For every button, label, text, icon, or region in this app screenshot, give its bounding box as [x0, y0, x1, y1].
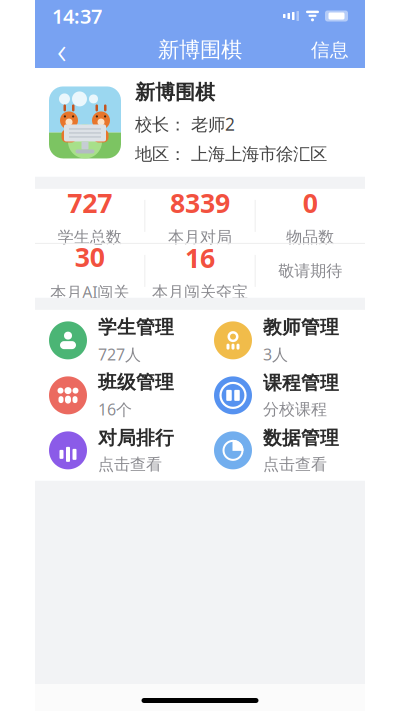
- staticText: 3人: [263, 344, 288, 365]
- staticText: 课程管理: [263, 372, 339, 394]
- staticText: 分校课程: [263, 399, 327, 419]
- button[interactable]: 信息: [301, 32, 359, 68]
- staticText: 点击查看: [98, 454, 162, 474]
- button[interactable]: 数据管理: [200, 423, 365, 478]
- staticText: 学生管理: [98, 316, 174, 339]
- staticText: 727: [67, 185, 112, 220]
- staticText: ‹: [57, 26, 67, 74]
- staticText: 敬请期待: [278, 261, 342, 281]
- staticText: 本月闯关夺宝: [152, 282, 248, 302]
- button[interactable]: 课程管理: [200, 368, 365, 423]
- staticText: 727人: [98, 344, 141, 365]
- staticText: 新博围棋: [135, 80, 215, 105]
- staticText: 新博围棋: [158, 37, 242, 63]
- button[interactable]: 对局排行: [35, 423, 200, 478]
- staticText: 16: [185, 240, 215, 275]
- button[interactable]: 教师管理: [200, 313, 365, 368]
- staticText: 16个: [98, 399, 132, 420]
- staticText: 本月对局: [168, 227, 232, 247]
- staticText: 物品数: [286, 227, 334, 247]
- staticText: 8339: [170, 185, 230, 220]
- staticText: 14:37: [52, 3, 102, 29]
- staticText: 校长： 老师2: [135, 113, 235, 136]
- staticText: 学生总数: [58, 227, 122, 247]
- button[interactable]: 学生管理: [35, 313, 200, 368]
- staticText: 对局排行: [98, 427, 174, 449]
- button[interactable]: Back: [41, 32, 83, 68]
- staticText: 班级管理: [98, 371, 174, 394]
- staticText: 地区： 上海上海市徐汇区: [135, 144, 327, 165]
- staticText: 数据管理: [263, 427, 339, 449]
- staticText: 30: [75, 239, 105, 274]
- staticText: 信息: [311, 38, 349, 61]
- staticText: 点击查看: [263, 454, 327, 474]
- staticText: 教师管理: [263, 316, 339, 339]
- button[interactable]: 班级管理: [35, 368, 200, 423]
- staticText: 0: [303, 185, 318, 220]
- staticText: 本月AI闯关: [50, 281, 129, 303]
